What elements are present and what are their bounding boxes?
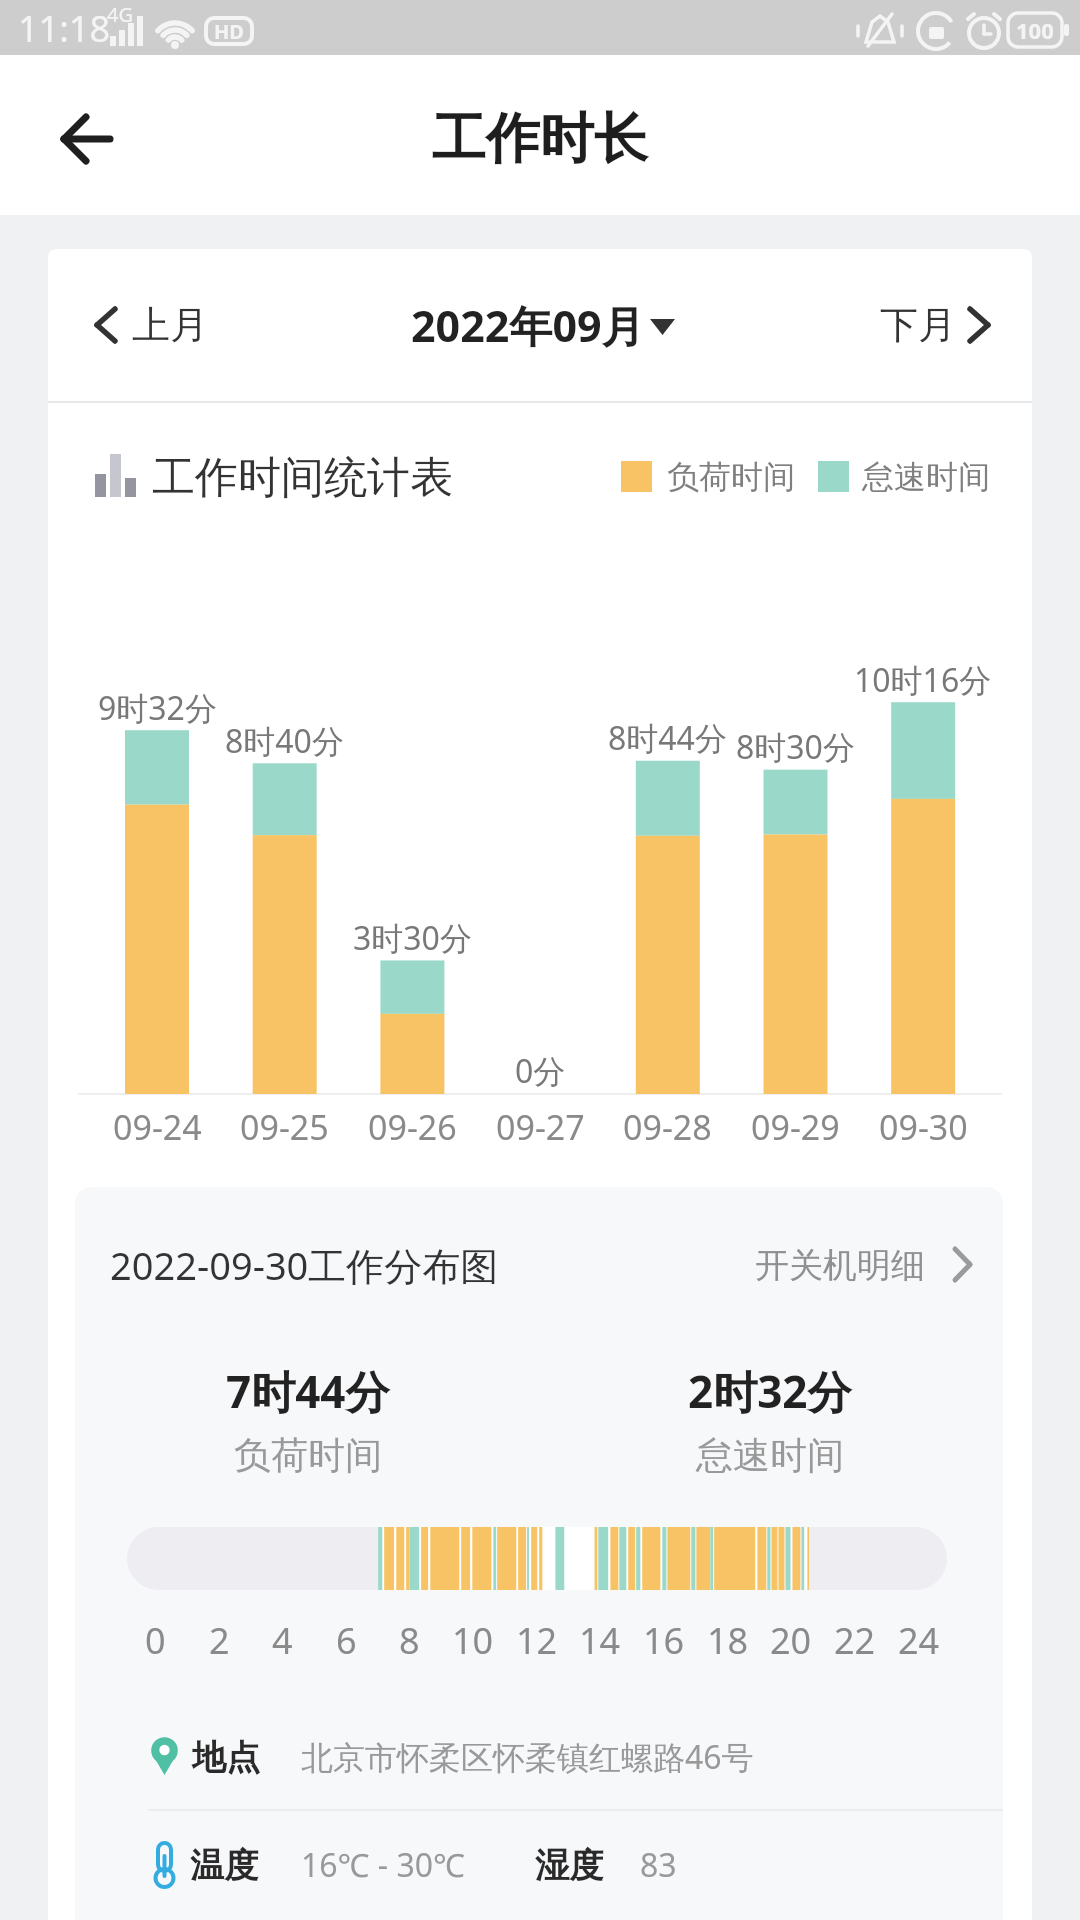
staticText: 8时44分 (608, 716, 727, 760)
staticText: 0 (145, 1616, 166, 1665)
staticText: 湿度 (535, 1844, 603, 1887)
button[interactable] (38, 91, 136, 186)
staticText: 负荷时间 (667, 457, 795, 497)
button[interactable]: 2022年09月 (388, 275, 698, 375)
staticText: 3时30分 (353, 916, 472, 960)
staticText: 09-28 (623, 1104, 712, 1150)
staticText: 12 (516, 1616, 558, 1665)
staticText: 20 (770, 1616, 812, 1665)
staticText: 2时32分 (688, 1361, 852, 1421)
staticText: 7时44分 (226, 1361, 390, 1421)
staticText: 2022-09-30工作分布图 (110, 1239, 499, 1291)
staticText: 09-27 (496, 1104, 585, 1150)
staticText: 工作时长 (432, 105, 648, 173)
staticText: 9时32分 (98, 686, 217, 730)
staticText: 0分 (515, 1049, 566, 1093)
staticText: 负荷时间 (234, 1432, 382, 1479)
staticText: 16℃ - 30℃ (301, 1843, 465, 1887)
button[interactable]: 开关机明细 (725, 1225, 985, 1305)
staticText: 温度 (190, 1844, 258, 1887)
staticText: 2022年09月 (411, 296, 645, 355)
staticText: 4 (272, 1616, 293, 1665)
staticText: 24 (898, 1616, 940, 1665)
staticText: HD (214, 18, 244, 45)
staticText: 4G (107, 1, 133, 28)
staticText: 北京市怀柔区怀柔镇红螺路46号 (301, 1735, 754, 1779)
staticText: 8时30分 (736, 725, 855, 769)
button[interactable]: 上月 (78, 275, 268, 375)
staticText: 18 (707, 1616, 749, 1665)
staticText: 09-29 (751, 1104, 840, 1150)
staticText: 100 (1016, 15, 1054, 45)
staticText: 8时40分 (225, 719, 344, 763)
staticText: 怠速时间 (862, 457, 990, 497)
staticText: 怠速时间 (696, 1432, 844, 1479)
staticText: 09-30 (879, 1104, 968, 1150)
staticText: 09-24 (113, 1104, 202, 1150)
staticText: 10时16分 (854, 658, 992, 702)
staticText: 83 (640, 1843, 677, 1887)
staticText: 22 (834, 1616, 876, 1665)
staticText: 09-26 (368, 1104, 457, 1150)
staticText: 开关机明细 (755, 1244, 925, 1287)
staticText: 09-25 (240, 1104, 329, 1150)
staticText: 14 (579, 1616, 621, 1665)
staticText: 16 (643, 1616, 685, 1665)
staticText: 11:18 (18, 4, 111, 53)
staticText: 10 (452, 1616, 494, 1665)
staticText: 2 (209, 1616, 230, 1665)
staticText: 6 (336, 1616, 357, 1665)
staticText: 上月 (132, 301, 208, 349)
staticText: 下月 (880, 301, 956, 349)
staticText: 8 (399, 1616, 420, 1665)
staticText: 地点 (192, 1736, 260, 1779)
button[interactable]: 下月 (818, 275, 1008, 375)
staticText: 工作时间统计表 (152, 451, 453, 505)
